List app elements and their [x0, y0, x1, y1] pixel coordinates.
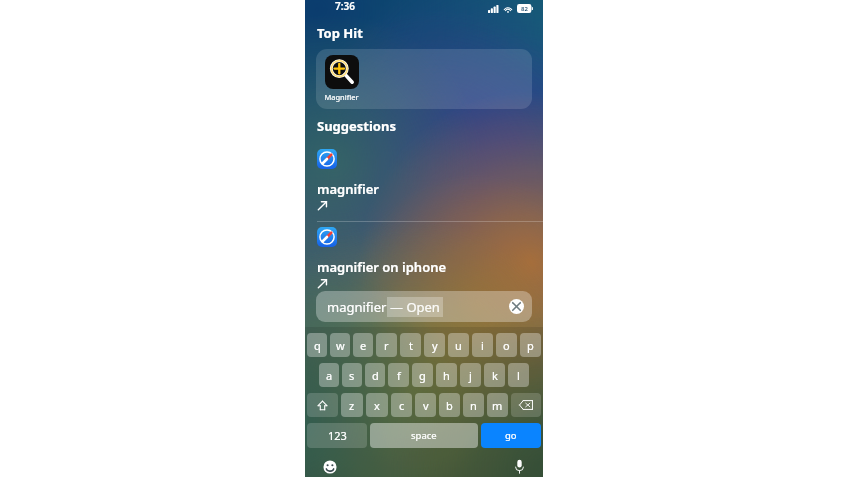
button[interactable]: k [484, 363, 505, 387]
staticText: 82 [521, 5, 528, 13]
button[interactable]: Magnifier [316, 49, 532, 109]
button[interactable]: h [436, 363, 457, 387]
staticText: v [423, 398, 429, 413]
staticText: b [446, 398, 453, 413]
staticText: l [517, 368, 520, 383]
button[interactable]: magnifier [316, 291, 532, 322]
button[interactable]: Shift [307, 393, 338, 417]
staticText: q [314, 338, 321, 353]
button[interactable]: v [415, 393, 436, 417]
staticText: magnifier [317, 180, 379, 198]
button[interactable]: b [439, 393, 460, 417]
button[interactable]: i [472, 333, 493, 357]
staticText: h [443, 368, 450, 383]
staticText: d [372, 368, 379, 383]
button[interactable]: Dictation [514, 459, 525, 474]
staticText: i [481, 338, 484, 353]
button[interactable]: a [319, 363, 339, 387]
staticText: space [411, 429, 437, 442]
staticText: Suggestions [317, 117, 396, 135]
button[interactable]: q [307, 333, 327, 357]
staticText: j [469, 368, 472, 383]
button[interactable]: l [508, 363, 529, 387]
staticText: c [399, 398, 405, 413]
staticText: magnifier [327, 298, 387, 316]
button[interactable]: magnifier [305, 144, 543, 221]
button[interactable]: Emoji keyboard [323, 460, 337, 474]
staticText: w [336, 338, 345, 353]
staticText: g [419, 368, 426, 383]
button[interactable]: d [365, 363, 385, 387]
button[interactable]: s [342, 363, 362, 387]
staticText: m [492, 398, 503, 413]
button[interactable]: n [463, 393, 484, 417]
button[interactable]: space [370, 423, 478, 448]
staticText: z [349, 398, 355, 413]
button[interactable]: go [481, 423, 541, 448]
staticText: — Open [390, 298, 440, 316]
staticText: o [503, 338, 510, 353]
button[interactable]: c [391, 393, 412, 417]
staticText: go [505, 429, 517, 442]
button[interactable]: e [353, 333, 373, 357]
button[interactable]: w [330, 333, 350, 357]
button[interactable]: p [520, 333, 541, 357]
staticText: r [384, 338, 389, 353]
staticText: magnifier on iphone [317, 258, 447, 276]
button[interactable]: m [487, 393, 508, 417]
staticText: k [492, 368, 498, 383]
staticText: x [374, 398, 380, 413]
button[interactable]: o [496, 333, 517, 357]
staticText: p [527, 338, 534, 353]
button[interactable]: magnifier on iphone [305, 222, 543, 299]
staticText: t [409, 338, 413, 353]
staticText: a [326, 368, 333, 383]
button[interactable]: Backspace [511, 393, 541, 417]
staticText: 123 [328, 428, 347, 443]
button[interactable]: 123 [307, 423, 367, 448]
staticText: u [455, 338, 462, 353]
staticText: Top Hit [317, 24, 363, 42]
staticText: e [360, 338, 367, 353]
button[interactable]: y [424, 333, 445, 357]
button[interactable]: f [388, 363, 409, 387]
staticText: f [397, 368, 401, 383]
button[interactable]: x [366, 393, 388, 417]
button[interactable]: t [400, 333, 421, 357]
button[interactable]: r [376, 333, 397, 357]
staticText: Magnifier [324, 92, 359, 102]
button[interactable]: j [460, 363, 481, 387]
staticText: y [432, 338, 438, 353]
staticText: s [349, 368, 355, 383]
button[interactable]: u [448, 333, 469, 357]
staticText: n [470, 398, 477, 413]
button[interactable]: Clear search [509, 299, 524, 314]
button[interactable]: z [341, 393, 363, 417]
button[interactable]: g [412, 363, 433, 387]
staticText: 7:36 [335, 0, 355, 13]
